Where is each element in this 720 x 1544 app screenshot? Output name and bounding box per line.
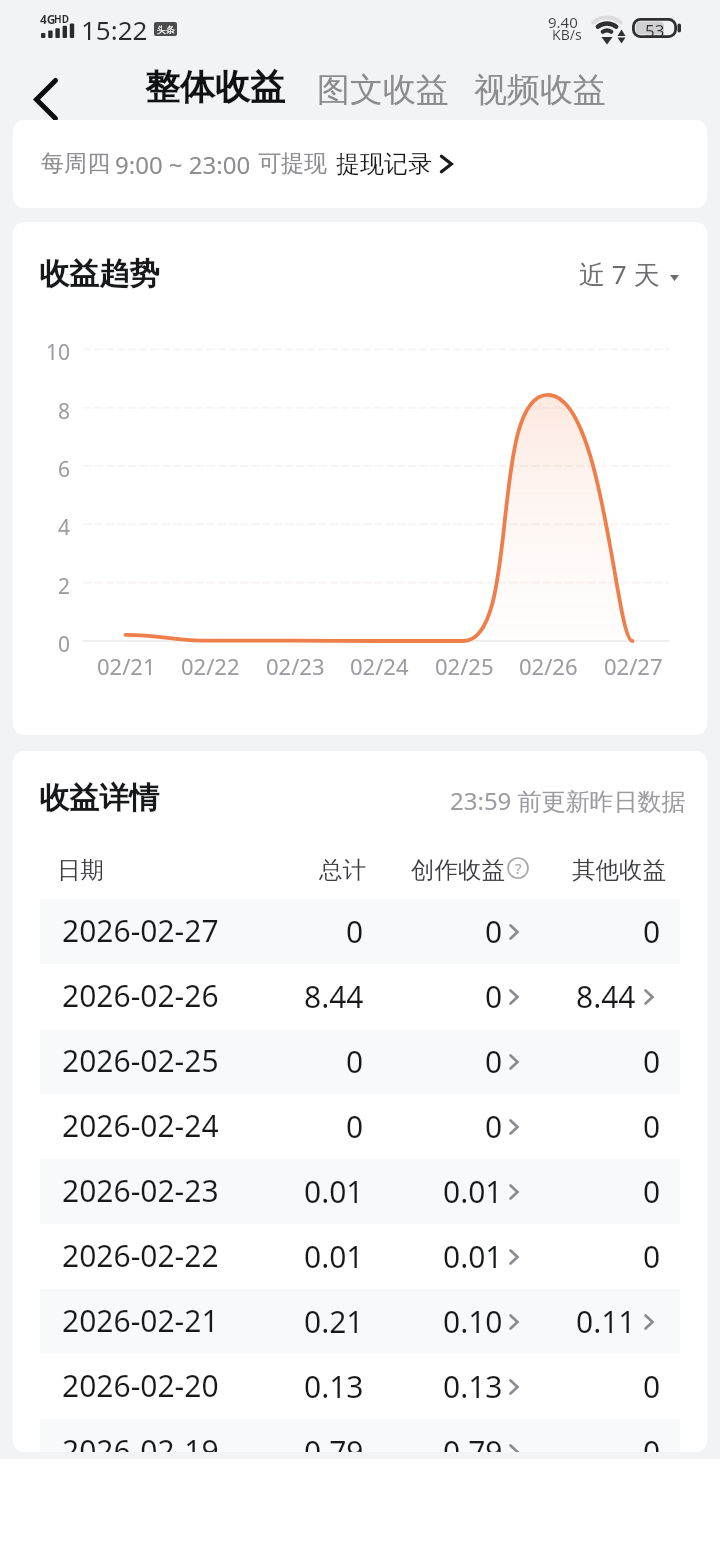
staticText: 总计 xyxy=(319,855,366,885)
button[interactable]: 0.13 xyxy=(373,1354,520,1419)
button[interactable]: 0.01 xyxy=(373,1224,520,1289)
button[interactable]: Back xyxy=(10,59,78,119)
staticText: 0 xyxy=(346,1106,364,1147)
button[interactable]: 近 7 天 xyxy=(571,256,681,292)
staticText: 2026-02-25 xyxy=(62,1040,219,1081)
staticText: 可提现 xyxy=(258,149,327,178)
button[interactable]: 视频收益 xyxy=(474,59,606,121)
staticText: 0 xyxy=(346,911,364,952)
staticText: HD xyxy=(54,12,69,26)
staticText: 4 xyxy=(58,513,71,542)
staticText: 图文收益 xyxy=(317,69,449,111)
button[interactable]: 图文收益 xyxy=(317,59,449,121)
staticText: 头条 xyxy=(157,24,175,35)
staticText: 02/24 xyxy=(350,651,409,681)
staticText: 53 xyxy=(645,19,665,42)
staticText: 8 xyxy=(58,397,71,426)
staticText: 0 xyxy=(485,976,503,1017)
staticText: 0 xyxy=(643,911,661,952)
button[interactable]: 2026-02-25 xyxy=(40,1029,680,1094)
staticText: 0.13 xyxy=(304,1366,364,1407)
button[interactable]: 0.11 xyxy=(476,1289,658,1354)
staticText: 0 xyxy=(643,1171,661,1212)
staticText: 2026-02-21 xyxy=(62,1300,219,1341)
staticText: KB/s xyxy=(552,25,582,44)
staticText: 0 xyxy=(643,1041,661,1082)
staticText: 0 xyxy=(485,1041,503,1082)
staticText: 15:22 xyxy=(81,12,148,47)
button[interactable]: 0.10 xyxy=(373,1289,520,1354)
staticText: 收益趋势 xyxy=(39,255,159,293)
staticText: 0 xyxy=(485,911,503,952)
staticText: 02/27 xyxy=(604,651,663,681)
staticText: 02/26 xyxy=(519,651,578,681)
button[interactable]: 2026-02-26 xyxy=(40,964,680,1029)
staticText: 0.11 xyxy=(576,1301,636,1342)
staticText: 0 xyxy=(58,630,71,659)
staticText: 2026-02-24 xyxy=(62,1105,219,1146)
staticText: 0 xyxy=(643,1106,661,1147)
staticText: 日期 xyxy=(57,855,104,885)
button[interactable]: 2026-02-21 xyxy=(40,1289,680,1354)
staticText: 0.13 xyxy=(443,1366,503,1407)
staticText: 02/21 xyxy=(97,651,156,681)
staticText: 每周四 xyxy=(41,149,110,178)
staticText: 其他收益 xyxy=(572,855,666,885)
staticText: 0.10 xyxy=(443,1301,503,1342)
staticText: 02/25 xyxy=(435,651,494,681)
staticText: 02/22 xyxy=(181,651,240,681)
button[interactable]: 0 xyxy=(373,1094,520,1159)
staticText: 2026-02-19 xyxy=(62,1430,219,1452)
button[interactable]: 创作收益说明 xyxy=(507,857,529,879)
button[interactable]: 0 xyxy=(373,899,520,964)
staticText: 10 xyxy=(46,338,71,367)
button[interactable]: 0 xyxy=(373,1029,520,1094)
staticText: 提现记录 xyxy=(336,149,432,179)
staticText: 近 7 天 xyxy=(579,256,660,292)
staticText: 0 xyxy=(643,1431,661,1452)
staticText: 0.79 xyxy=(304,1431,364,1452)
staticText: 0 xyxy=(643,1366,661,1407)
staticText: 2026-02-26 xyxy=(62,975,219,1016)
staticText: 2026-02-20 xyxy=(62,1365,219,1406)
staticText: 0.21 xyxy=(304,1301,364,1342)
staticText: 02/23 xyxy=(266,651,325,681)
button[interactable]: 每周四 xyxy=(13,120,707,208)
staticText: 23:59 前更新昨日数据 xyxy=(450,784,686,817)
button[interactable]: 2026-02-20 xyxy=(40,1354,680,1419)
button[interactable]: 2026-02-19 xyxy=(40,1419,680,1452)
button[interactable]: 0.01 xyxy=(373,1159,520,1224)
button[interactable]: 整体收益 xyxy=(145,56,285,118)
staticText: 8.44 xyxy=(576,976,636,1017)
staticText: ? xyxy=(515,858,522,878)
staticText: 2026-02-23 xyxy=(62,1170,219,1211)
button[interactable]: 8.44 xyxy=(476,964,658,1029)
button[interactable]: 2026-02-27 xyxy=(40,899,680,964)
staticText: 6 xyxy=(58,455,71,484)
button[interactable]: 提现记录 xyxy=(330,140,458,188)
staticText: 创作收益 xyxy=(411,855,505,885)
staticText: 9:00 ~ 23:00 xyxy=(115,148,251,181)
staticText: 0.01 xyxy=(304,1236,364,1277)
button[interactable]: 2026-02-22 xyxy=(40,1224,680,1289)
staticText: 2 xyxy=(58,572,71,601)
button[interactable]: 2026-02-23 xyxy=(40,1159,680,1224)
staticText: 0.01 xyxy=(304,1171,364,1212)
staticText: 整体收益 xyxy=(145,65,285,109)
staticText: 0.01 xyxy=(443,1171,503,1212)
staticText: 收益详情 xyxy=(39,779,159,817)
staticText: 2026-02-27 xyxy=(62,910,219,951)
staticText: 视频收益 xyxy=(474,69,606,111)
staticText: 9.40 xyxy=(548,12,578,32)
button[interactable]: 0.79 xyxy=(373,1419,520,1452)
staticText: 4G xyxy=(40,11,56,27)
staticText: 8.44 xyxy=(304,976,364,1017)
staticText: 0 xyxy=(485,1106,503,1147)
button[interactable]: 0 xyxy=(373,964,520,1029)
staticText: 0.01 xyxy=(443,1236,503,1277)
staticText: 0 xyxy=(346,1041,364,1082)
staticText: 0.79 xyxy=(443,1431,503,1452)
button[interactable]: 2026-02-24 xyxy=(40,1094,680,1159)
staticText: 2026-02-22 xyxy=(62,1235,219,1276)
staticText: 0 xyxy=(643,1236,661,1277)
